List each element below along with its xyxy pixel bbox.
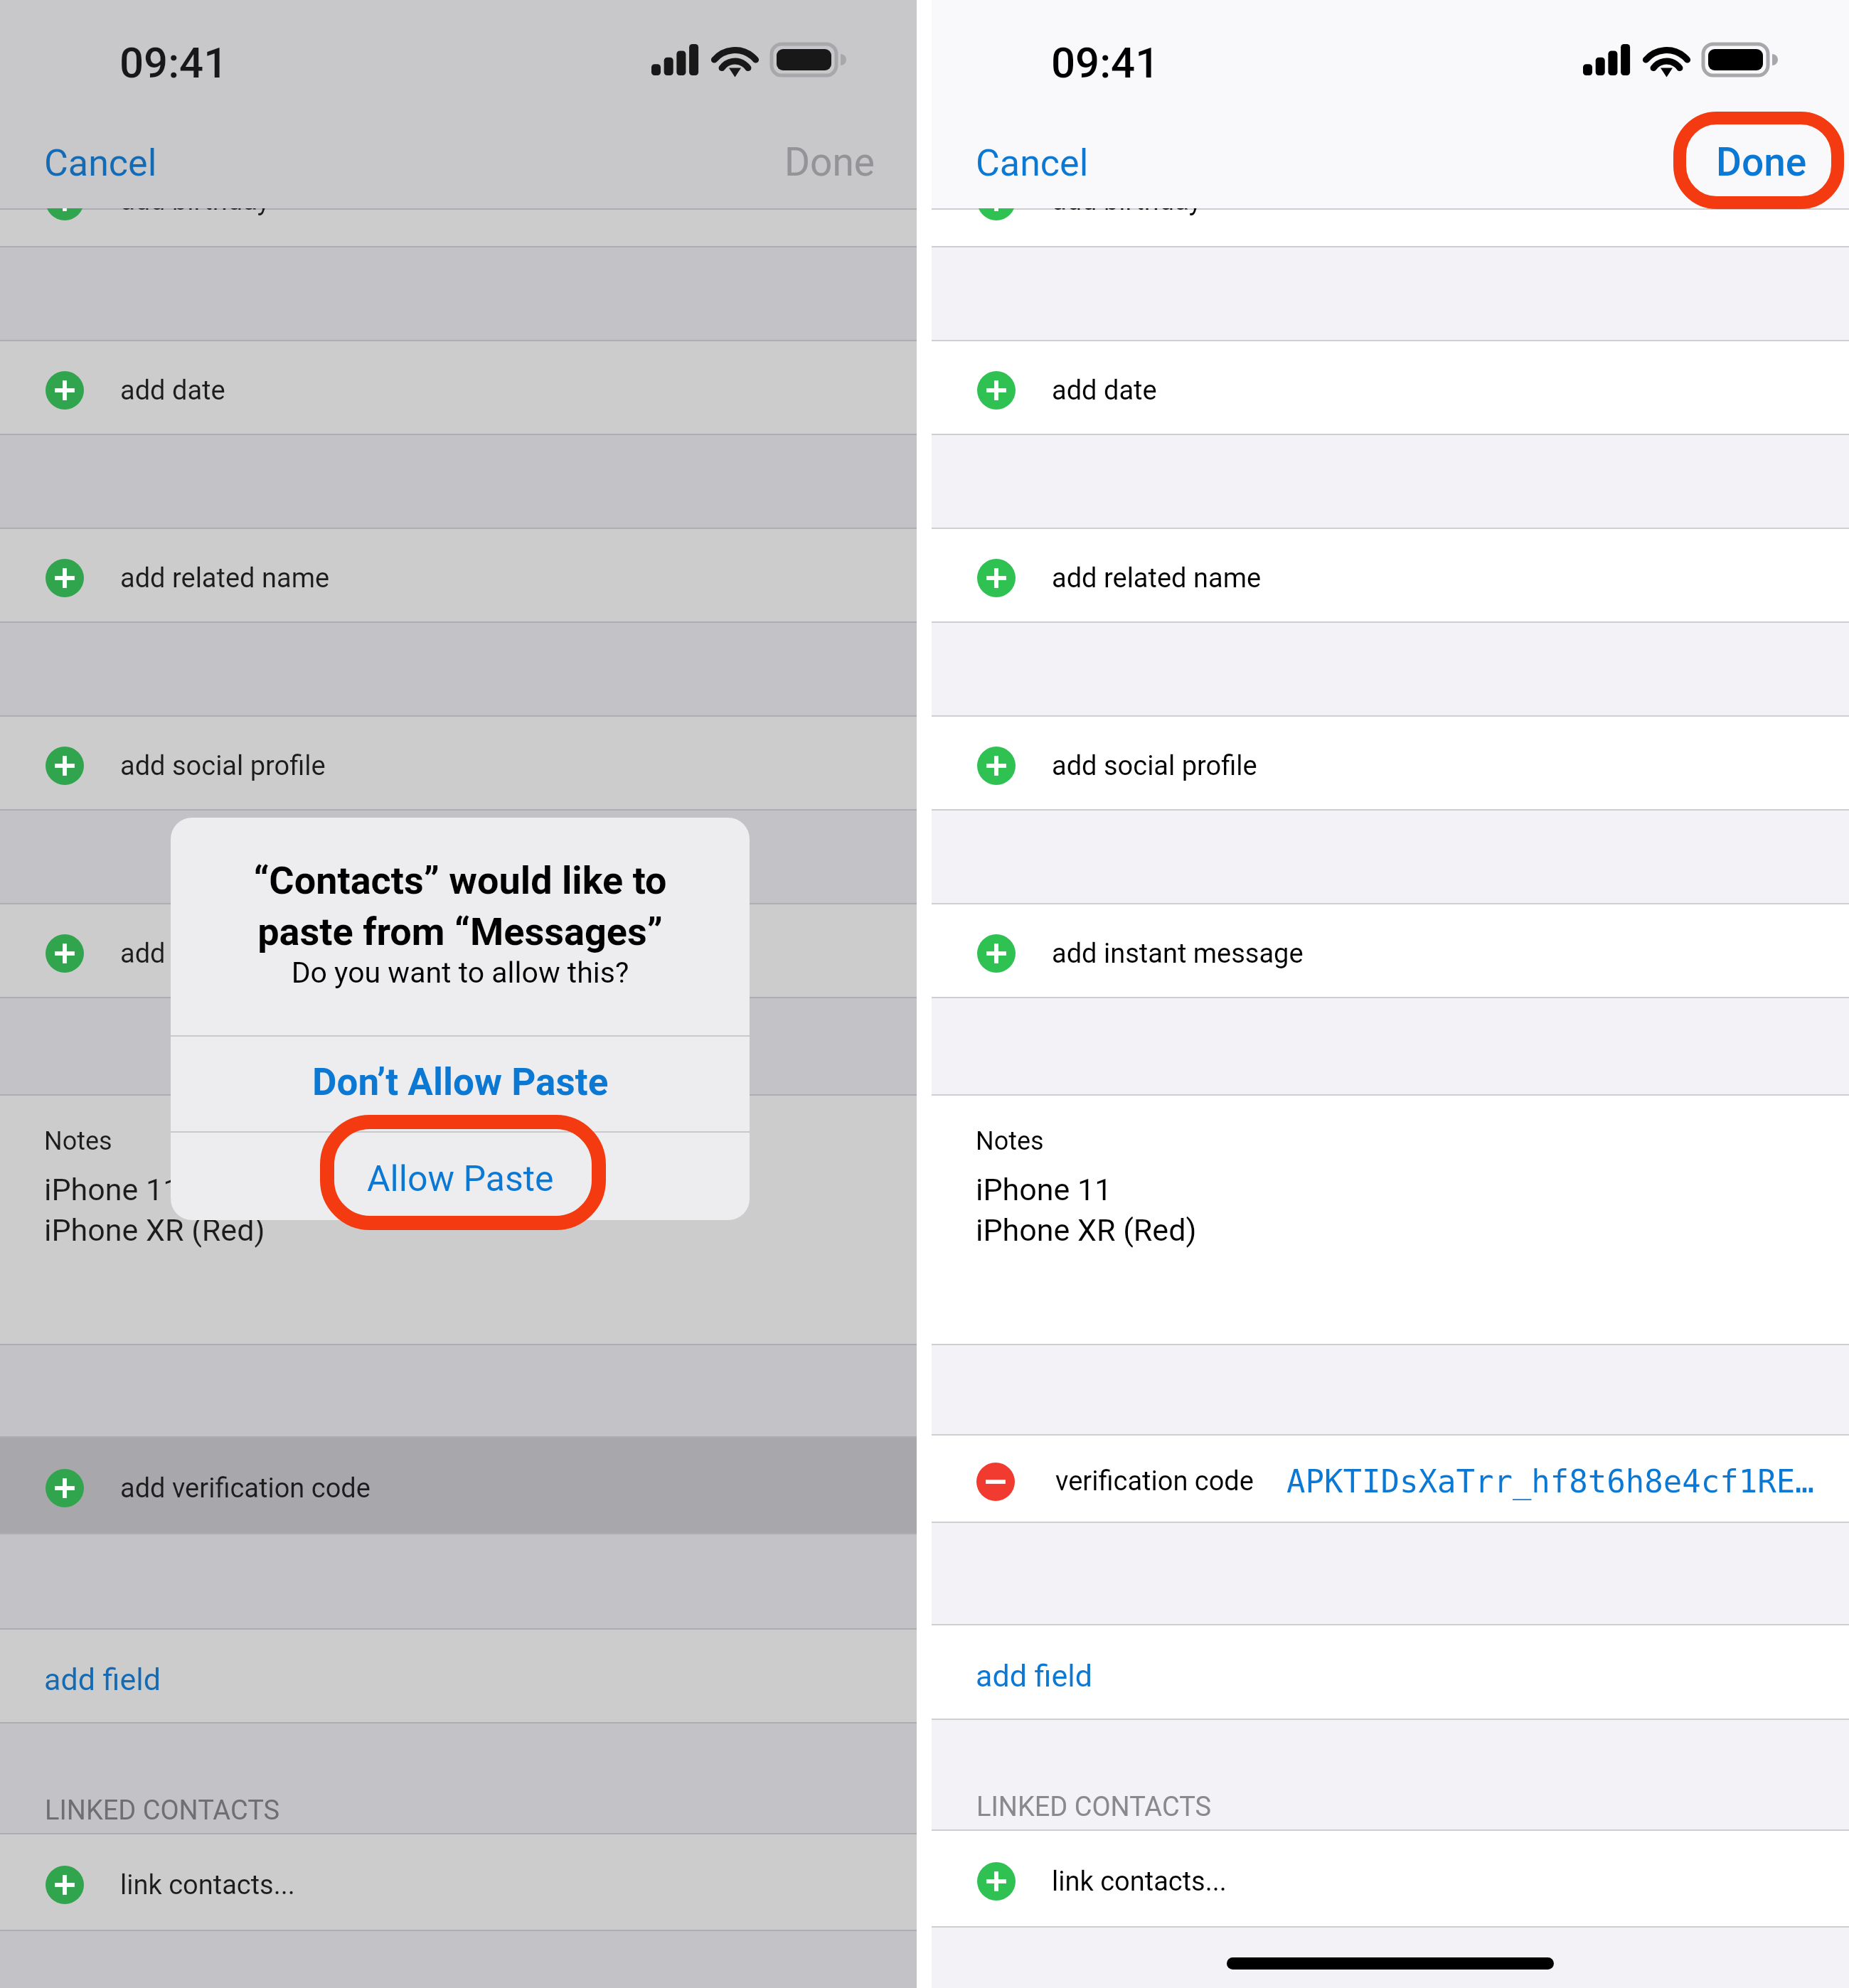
button[interactable]: add social profile [932, 719, 1849, 811]
button[interactable]: add birthday [932, 208, 1849, 220]
button[interactable]: add instant message [932, 907, 1849, 998]
staticText: Don’t Allow Paste [312, 1060, 609, 1104]
button[interactable]: Notes [932, 1096, 1849, 1345]
button[interactable]: add verification code [0, 1440, 917, 1534]
staticText: add related name [120, 562, 330, 594]
other: Allow Paste highlight [320, 1115, 606, 1230]
staticText: iPhone XR (Red) [44, 1212, 265, 1248]
button[interactable]: add birthday [0, 208, 917, 220]
staticText: add verification code [120, 1473, 371, 1505]
button[interactable]: add instant message [0, 907, 917, 998]
button[interactable]: add field [932, 1625, 1849, 1720]
button[interactable]: Allow Paste [171, 1135, 750, 1220]
button[interactable]: link contacts... [0, 1837, 917, 1931]
staticText: “Contacts” would like to paste from “Mes… [171, 858, 750, 954]
button[interactable]: add social profile [0, 719, 917, 811]
staticText: Notes [44, 1126, 112, 1156]
button[interactable]: add date [932, 343, 1849, 435]
staticText: add related name [1052, 562, 1262, 594]
staticText: verification code [1055, 1465, 1254, 1497]
staticText: LINKED CONTACTS [976, 1791, 1212, 1823]
staticText: LINKED CONTACTS [45, 1795, 280, 1827]
button[interactable]: Don’t Allow Paste [171, 1035, 750, 1129]
staticText: Cancel [44, 141, 157, 185]
staticText: add birthday [1052, 208, 1202, 217]
staticText: add instant message [120, 938, 372, 970]
staticText: add field [44, 1662, 161, 1697]
staticText: iPhone 11 [976, 1172, 1112, 1207]
staticText: add social profile [1052, 750, 1257, 782]
button[interactable]: Notes [0, 1096, 917, 1345]
button[interactable]: Cancel [23, 117, 176, 196]
staticText: Notes [976, 1126, 1044, 1156]
staticText: Done [1716, 139, 1807, 185]
button[interactable]: add field [0, 1630, 917, 1724]
staticText: add social profile [120, 750, 326, 782]
staticText: Allow Paste [367, 1158, 554, 1200]
button[interactable]: add related name [932, 531, 1849, 623]
staticText: add field [976, 1658, 1092, 1694]
button[interactable]: Cancel [954, 117, 1107, 196]
staticText: add instant message [1052, 938, 1304, 970]
button[interactable]: verification code [932, 1438, 1849, 1523]
staticText: 09:41 [1051, 38, 1160, 87]
staticText: link contacts... [120, 1869, 295, 1901]
button[interactable]: Done [764, 117, 896, 196]
staticText: add birthday [120, 208, 270, 217]
button[interactable]: add date [0, 343, 917, 435]
staticText: Do you want to allow this? [171, 956, 750, 990]
button[interactable]: Done [1697, 117, 1828, 196]
button[interactable]: add related name [0, 531, 917, 623]
staticText: add date [1052, 375, 1157, 407]
staticText: Cancel [976, 141, 1089, 185]
staticText: link contacts... [1052, 1866, 1227, 1898]
other: Done button highlight [1673, 112, 1844, 209]
button[interactable]: link contacts... [932, 1833, 1849, 1928]
staticText: APKTIDsXaTrr_hf8t6h8e4cf1RE… [1286, 1463, 1814, 1500]
staticText: add date [120, 375, 225, 407]
staticText: 09:41 [119, 38, 228, 87]
staticText: Done [784, 139, 875, 185]
staticText: iPhone 11 [44, 1172, 181, 1207]
staticText: iPhone XR (Red) [976, 1212, 1197, 1248]
